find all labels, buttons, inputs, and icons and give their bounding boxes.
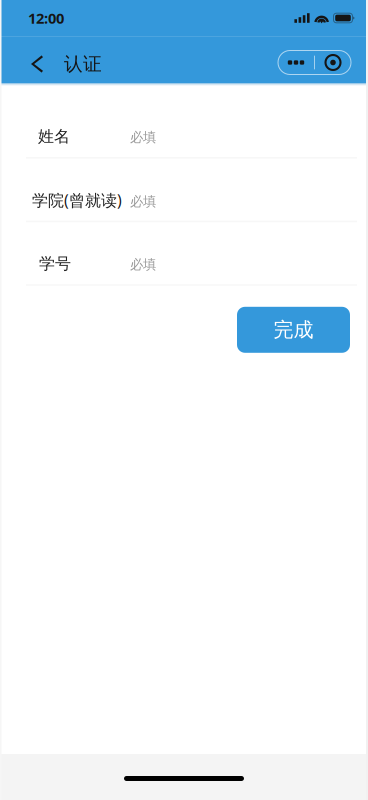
button[interactable]: More <box>278 37 368 83</box>
staticText: 完成 <box>273 317 313 342</box>
button[interactable]: 完成 <box>237 307 350 353</box>
staticText: 必填 <box>130 193 156 210</box>
staticText: 姓名 <box>38 127 70 146</box>
staticText: 必填 <box>130 129 156 146</box>
staticText: 学院(曾就读) <box>32 189 122 211</box>
button[interactable]: Back <box>0 37 64 83</box>
staticText: 12:00 <box>28 8 64 28</box>
staticText: 认证 <box>64 52 102 75</box>
staticText: 必填 <box>130 256 156 273</box>
staticText: 学号 <box>39 254 71 274</box>
